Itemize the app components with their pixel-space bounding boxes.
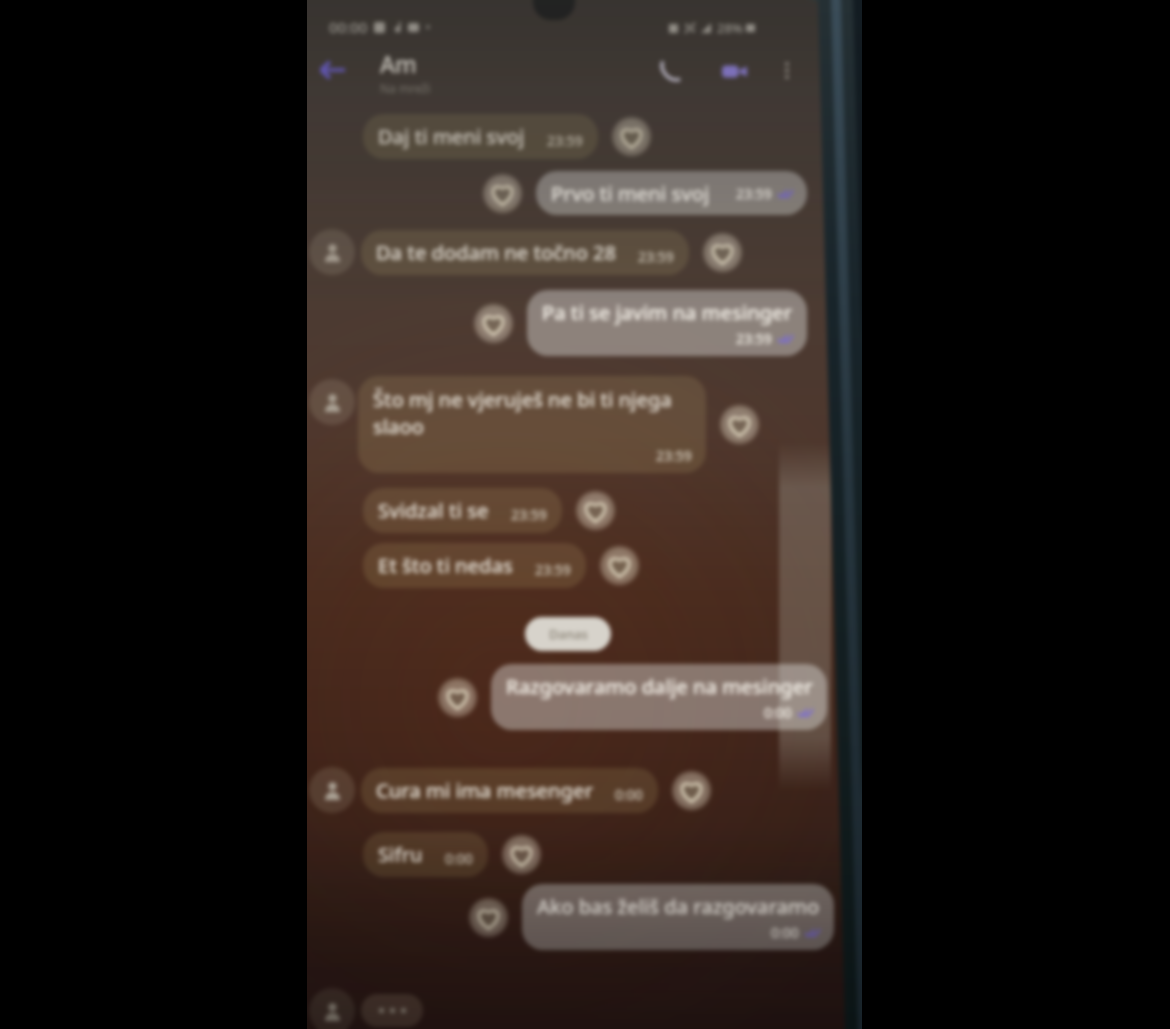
staticText: 23:59 [511, 505, 547, 524]
staticText: 0:00 [764, 703, 792, 722]
button[interactable]: Like [473, 303, 514, 344]
button[interactable]: More options [773, 56, 801, 84]
staticText: Et što ti nedas [378, 552, 513, 579]
staticText: Svidzal ti se [378, 497, 489, 524]
staticText: 23:59 [736, 184, 772, 203]
button[interactable]: Daj ti meni svoj [363, 114, 598, 159]
button[interactable]: Contact avatar [309, 379, 355, 425]
button[interactable]: Like [482, 173, 523, 214]
button[interactable]: Like [611, 116, 652, 157]
button[interactable]: Contact avatar [309, 229, 355, 275]
staticText: 23:59 [656, 446, 692, 465]
button[interactable]: Sifru [363, 832, 488, 877]
button[interactable]: Cura mi ima mesenger [361, 768, 658, 813]
staticText: Prvo ti meni svoj [551, 180, 710, 207]
staticText: 0:00 [615, 785, 643, 804]
button[interactable]: Call [655, 56, 685, 86]
button[interactable]: Like [702, 232, 743, 273]
staticText: 0:00 [445, 849, 473, 868]
staticText: 23:59 [638, 247, 674, 266]
button[interactable]: Prvo ti meni svoj [536, 171, 807, 215]
staticText: Na mreži [380, 80, 431, 96]
button[interactable]: Like [437, 677, 478, 718]
staticText: Da te dodam ne točno 28 [376, 239, 616, 266]
button[interactable]: Like [599, 545, 640, 586]
staticText: 23:59 [736, 329, 772, 348]
staticText: Daj ti meni svoj [378, 123, 525, 150]
button[interactable]: Da te dodam ne točno 28 [361, 230, 689, 275]
staticText: 0:00 [771, 923, 799, 942]
button[interactable]: Razgovaramo dalje na mesinger [491, 664, 827, 730]
staticText: Razgovaramo dalje na mesinger [506, 673, 813, 700]
button[interactable]: Like [468, 897, 509, 938]
staticText: 23:59 [547, 131, 583, 150]
staticText: Što mj ne vjeruješ ne bi ti njega slaoo [373, 386, 692, 440]
button[interactable]: Back [315, 53, 349, 87]
button[interactable]: Svidzal ti se [363, 488, 562, 533]
button[interactable]: Like [501, 834, 542, 875]
staticText: 28% [717, 19, 743, 37]
button[interactable]: Contact avatar [309, 767, 355, 813]
button[interactable]: Contact avatar [309, 988, 355, 1029]
button[interactable]: Pa ti se javim na mesinger [527, 290, 807, 356]
staticText: 00:00 [329, 17, 368, 37]
staticText: Am [380, 48, 417, 79]
button[interactable]: Like [719, 404, 760, 445]
staticText: 23:59 [535, 560, 571, 579]
button[interactable]: Što mj ne vjeruješ ne bi ti njega slaoo [358, 376, 706, 473]
staticText: Cura mi ima mesenger [376, 777, 593, 804]
staticText: Danas [549, 625, 588, 643]
button[interactable]: Like [575, 490, 616, 531]
button[interactable]: Ako bas želiš da razgovaramo [522, 884, 834, 950]
button[interactable]: Video call [717, 54, 751, 88]
button[interactable] [361, 994, 423, 1027]
staticText: Sifru [378, 841, 423, 868]
staticText: Ako bas želiš da razgovaramo [537, 893, 820, 920]
button[interactable]: Like [671, 770, 712, 811]
staticText: Pa ti se javim na mesinger [542, 299, 793, 326]
button[interactable]: Et što ti nedas [363, 543, 586, 588]
button[interactable]: Danas [525, 617, 611, 651]
